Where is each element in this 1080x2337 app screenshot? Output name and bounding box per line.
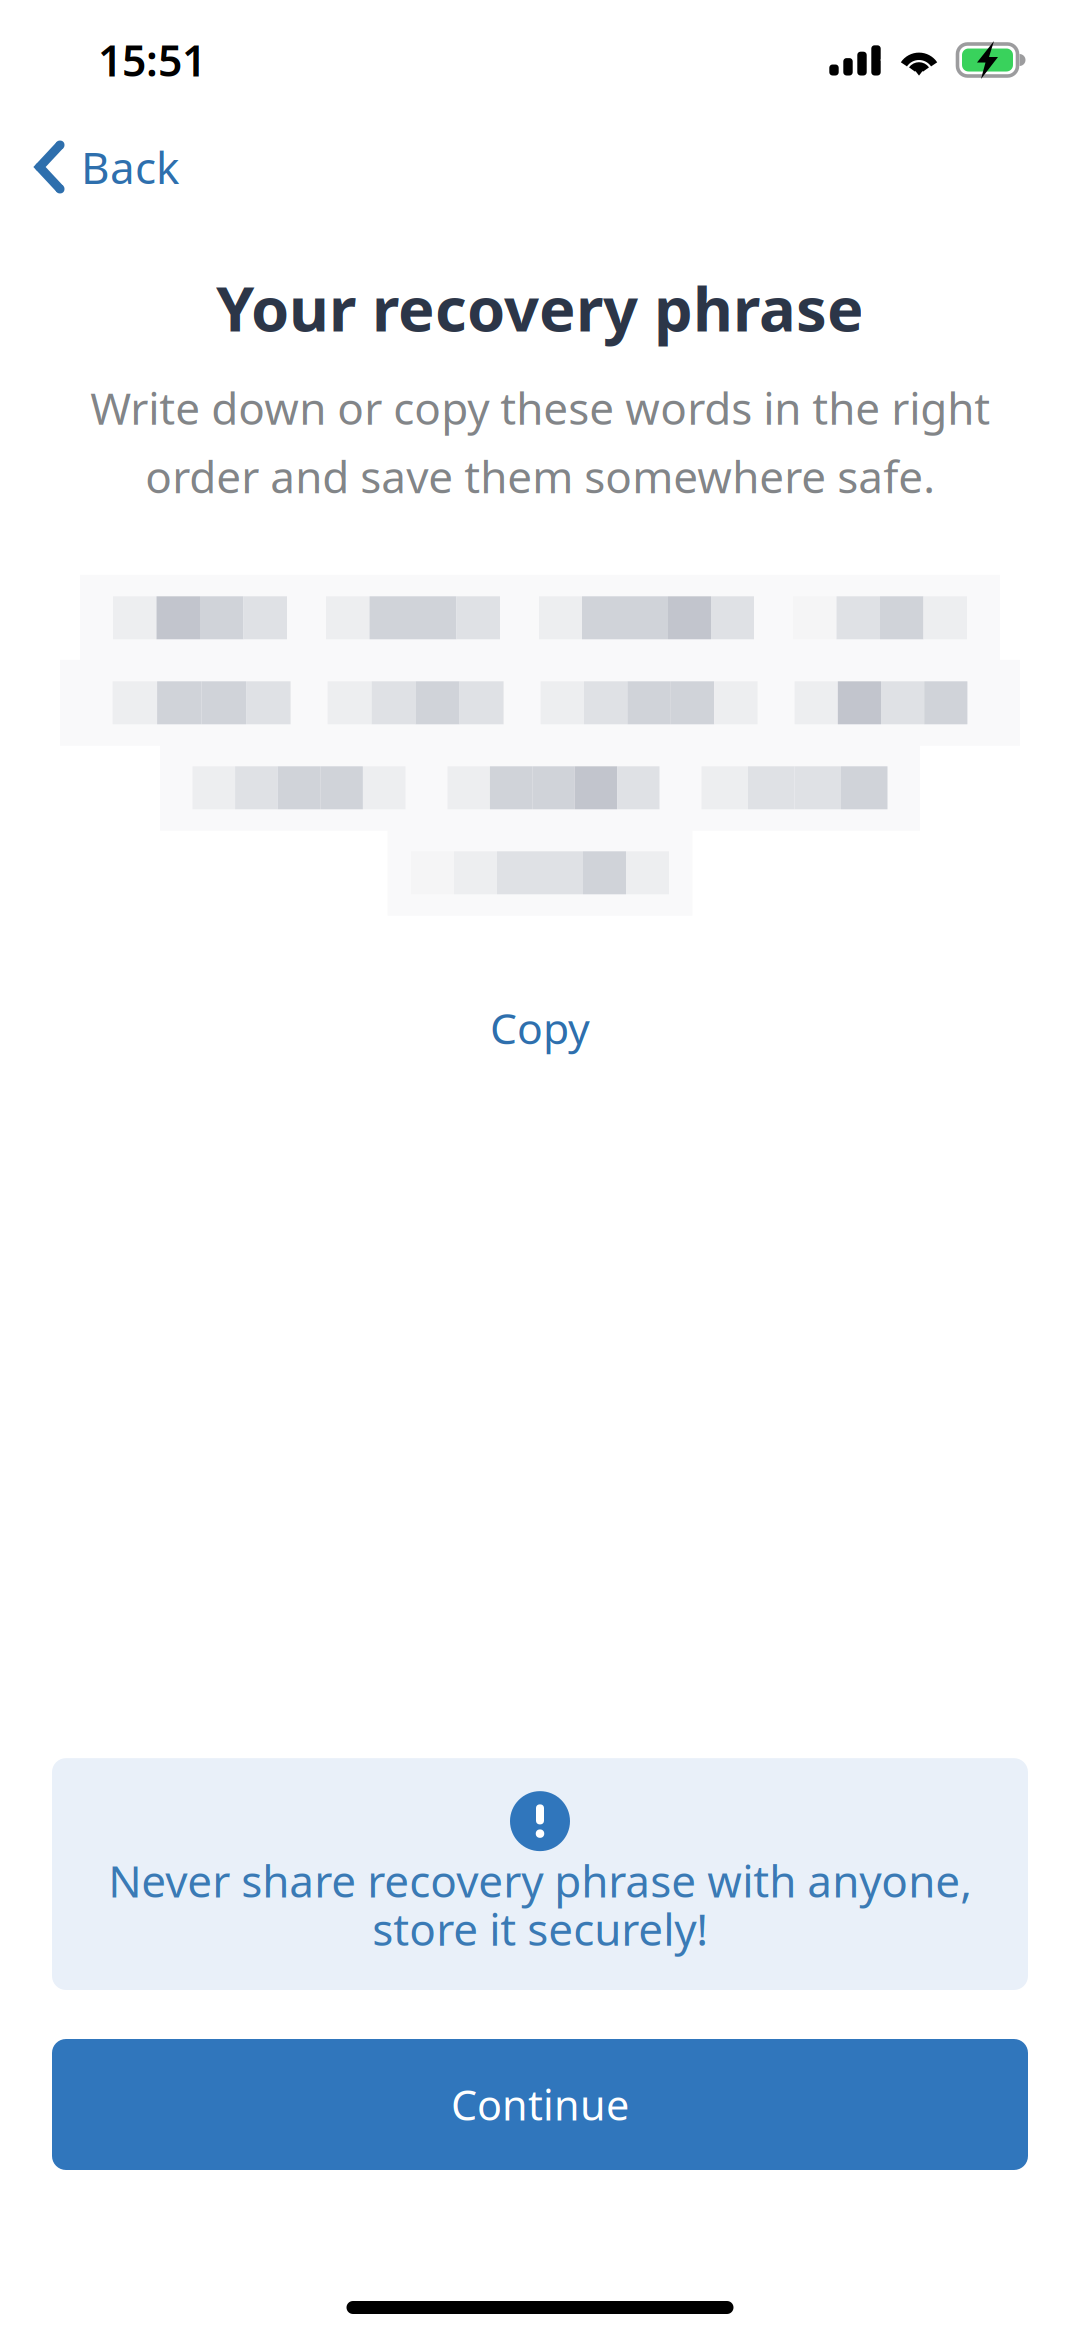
staticText: Continue xyxy=(451,2077,629,2132)
staticText: 15:51 xyxy=(98,32,206,88)
staticText: Your recovery phrase xyxy=(216,267,864,348)
staticText: Write down or copy these words in the ri… xyxy=(90,378,990,505)
staticText: Never share recovery phrase with anyone,… xyxy=(108,1851,972,1958)
button[interactable]: Copy xyxy=(430,969,650,1086)
staticText: Back xyxy=(81,138,179,196)
button[interactable]: Back xyxy=(0,121,207,213)
staticText: Copy xyxy=(490,999,590,1056)
button[interactable]: Continue xyxy=(52,2039,1028,2170)
